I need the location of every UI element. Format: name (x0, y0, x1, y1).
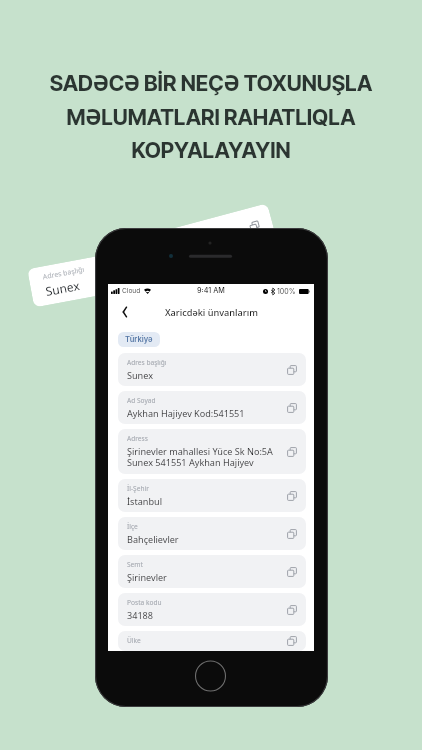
button[interactable]: İl-Şehir (118, 479, 306, 512)
staticText: Ülke (127, 636, 141, 645)
staticText: 100% (277, 287, 296, 295)
staticText: Bahçelievler (127, 533, 179, 545)
staticText: Sunex (127, 369, 153, 381)
staticText: Xaricdəki ünvanlarım (165, 306, 258, 319)
button[interactable]: Adress (118, 429, 306, 474)
staticText: Şirinevler mahallesi Yüce Sk No:5A Sunex… (127, 445, 273, 469)
staticText: Aykhan Hajiyev Kod:541551 (127, 407, 245, 419)
staticText: İl-Şehir (127, 484, 149, 493)
staticText: Sunex (44, 277, 81, 299)
staticText: SADƏCƏ BİR NEÇƏ TOXUNUŞLA MƏLUMATLARI RA… (0, 70, 422, 163)
staticText: 9:41 AM (197, 286, 225, 295)
staticText: 34188 (127, 609, 154, 621)
button[interactable]: Back (115, 303, 133, 321)
button[interactable]: Türkiyə (118, 332, 160, 347)
staticText: İstanbul (127, 495, 163, 507)
staticText: İlçe (127, 522, 138, 531)
button[interactable]: Posta kodu (118, 593, 306, 626)
staticText: Adress (127, 434, 148, 443)
button[interactable]: İlçe (118, 517, 306, 550)
staticText: Şirinevler (127, 571, 167, 583)
button[interactable]: Ülke (118, 631, 306, 651)
staticText: Adres başlığı (42, 265, 85, 282)
button[interactable]: Adres başlığı (118, 353, 306, 386)
staticText: Cloud (122, 287, 141, 295)
staticText: Türkiyə (125, 335, 153, 344)
staticText: Posta kodu (127, 598, 162, 607)
button[interactable]: Ad Soyad (118, 391, 306, 424)
staticText: Ad Soyad (127, 396, 156, 405)
button[interactable]: Semt (118, 555, 306, 588)
staticText: Semt (127, 560, 143, 569)
staticText: Adres başlığı (127, 358, 167, 367)
